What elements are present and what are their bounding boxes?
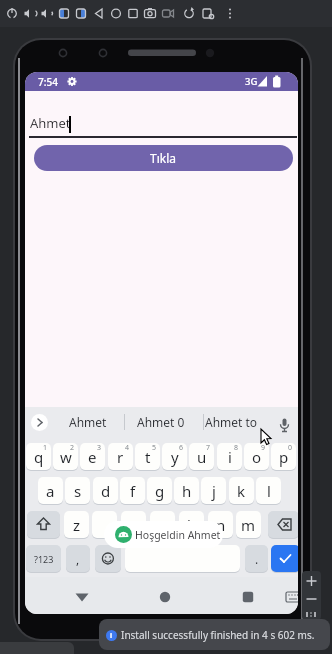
button[interactable]: ?123 bbox=[26, 545, 61, 572]
staticText: 5 bbox=[152, 443, 157, 453]
button[interactable]: g bbox=[147, 477, 172, 504]
button[interactable] bbox=[95, 545, 121, 572]
staticText: h bbox=[182, 481, 192, 501]
button[interactable]: d bbox=[93, 477, 118, 504]
staticText: y bbox=[171, 447, 179, 467]
staticText: g bbox=[155, 481, 165, 501]
staticText: Ahmet to bbox=[205, 414, 258, 430]
button[interactable]: e bbox=[80, 443, 105, 470]
staticText: t bbox=[145, 447, 151, 467]
button[interactable] bbox=[276, 416, 293, 434]
staticText: 3 bbox=[97, 443, 102, 453]
button[interactable]: u bbox=[189, 443, 214, 470]
staticText: q bbox=[34, 447, 44, 467]
staticText: l bbox=[267, 481, 271, 501]
staticText: z bbox=[73, 515, 81, 535]
button[interactable] bbox=[73, 4, 89, 23]
button[interactable]: Ahmet bbox=[48, 411, 128, 433]
staticText: 9 bbox=[261, 443, 266, 453]
button[interactable]: h bbox=[174, 477, 199, 504]
staticText: Ahmet bbox=[69, 414, 107, 430]
staticText: . bbox=[255, 551, 259, 567]
button[interactable]: r bbox=[108, 443, 133, 470]
button[interactable] bbox=[282, 586, 298, 608]
staticText: 7:54 bbox=[38, 75, 58, 89]
staticText: v bbox=[159, 515, 167, 535]
button[interactable]: . bbox=[245, 545, 268, 572]
button[interactable] bbox=[31, 414, 48, 431]
button[interactable] bbox=[160, 4, 176, 23]
staticText: u bbox=[197, 447, 207, 467]
staticText: 0 bbox=[288, 443, 293, 453]
button[interactable]: a bbox=[38, 477, 63, 504]
button[interactable] bbox=[27, 511, 60, 538]
button[interactable] bbox=[38, 4, 54, 23]
button[interactable]: v bbox=[150, 511, 175, 538]
staticText: Ahmet bbox=[30, 114, 71, 132]
staticText: f bbox=[130, 481, 136, 501]
button[interactable]: n bbox=[208, 511, 233, 538]
button[interactable] bbox=[92, 511, 117, 538]
button[interactable]: y bbox=[162, 443, 187, 470]
staticText: j bbox=[212, 481, 216, 501]
staticText: w bbox=[60, 447, 72, 467]
staticText: 4 bbox=[125, 443, 130, 453]
button[interactable]: c bbox=[121, 511, 146, 538]
button[interactable]: p bbox=[271, 443, 296, 470]
button[interactable]: i bbox=[217, 443, 242, 470]
button[interactable]: z bbox=[64, 511, 89, 538]
button[interactable]: f bbox=[120, 477, 145, 504]
staticText: r bbox=[117, 447, 124, 467]
button[interactable]: Tıkla bbox=[34, 145, 293, 171]
staticText: m bbox=[241, 515, 256, 535]
staticText: k bbox=[237, 481, 246, 501]
staticText: s bbox=[74, 481, 82, 501]
staticText: p bbox=[279, 447, 289, 467]
button[interactable]: s bbox=[65, 477, 90, 504]
staticText: 8 bbox=[234, 443, 239, 453]
button[interactable]: k bbox=[229, 477, 254, 504]
button[interactable] bbox=[200, 4, 216, 23]
staticText: 1 bbox=[43, 443, 48, 453]
button[interactable]: Ahmet to bbox=[191, 411, 271, 433]
button[interactable]: Ahmet 0 bbox=[121, 411, 201, 433]
staticText: Install successfully finished in 4 s 602… bbox=[121, 628, 315, 642]
button[interactable] bbox=[4, 4, 20, 23]
staticText: i bbox=[110, 631, 113, 641]
button[interactable] bbox=[154, 586, 176, 608]
staticText: 3G bbox=[245, 75, 258, 88]
button[interactable] bbox=[71, 586, 93, 608]
button[interactable]: w bbox=[53, 443, 78, 470]
button[interactable] bbox=[21, 4, 37, 23]
staticText: d bbox=[101, 481, 111, 501]
button[interactable] bbox=[125, 4, 141, 23]
button[interactable] bbox=[56, 4, 72, 23]
staticText: 2 bbox=[70, 443, 75, 453]
staticText: , bbox=[76, 551, 80, 567]
button[interactable] bbox=[142, 4, 158, 23]
staticText: 6 bbox=[179, 443, 184, 453]
staticText: Hoşgeldin Ahmet bbox=[135, 528, 221, 542]
staticText: e bbox=[88, 447, 97, 467]
button[interactable]: l bbox=[256, 477, 281, 504]
staticText: c bbox=[130, 515, 138, 535]
button[interactable] bbox=[91, 4, 107, 23]
button[interactable] bbox=[181, 4, 197, 23]
staticText: Tıkla bbox=[150, 150, 177, 166]
button[interactable]: , bbox=[66, 545, 90, 572]
button[interactable]: o bbox=[244, 443, 269, 470]
staticText: a bbox=[46, 481, 55, 501]
button[interactable]: b bbox=[179, 511, 204, 538]
button[interactable]: m bbox=[236, 511, 261, 538]
button[interactable] bbox=[271, 545, 298, 572]
staticText: ?123 bbox=[34, 553, 54, 565]
button[interactable]: t bbox=[135, 443, 160, 470]
button[interactable] bbox=[108, 4, 124, 23]
staticText: b bbox=[187, 515, 197, 535]
button[interactable] bbox=[237, 586, 259, 608]
button[interactable]: j bbox=[201, 477, 226, 504]
button[interactable] bbox=[222, 4, 238, 23]
button[interactable]: q bbox=[26, 443, 51, 470]
button[interactable] bbox=[268, 511, 298, 538]
